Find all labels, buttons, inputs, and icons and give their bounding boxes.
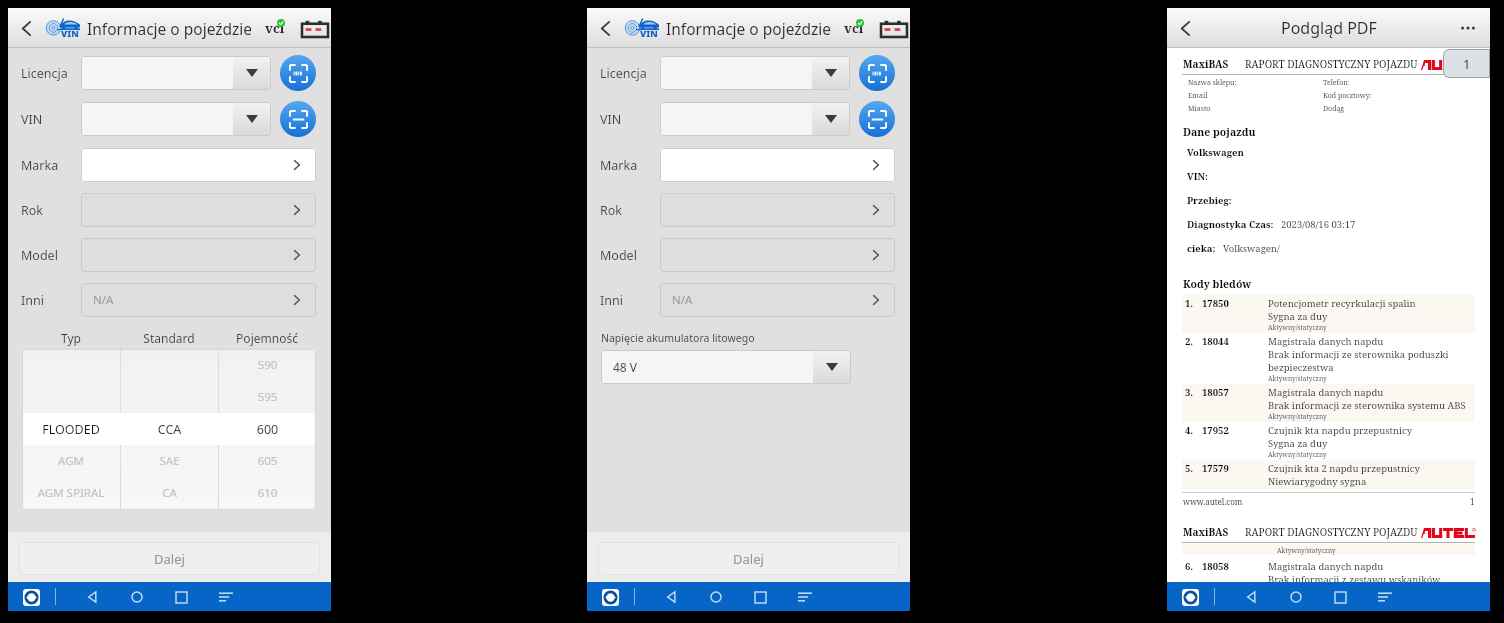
staticText: 3. (1185, 386, 1194, 399)
button[interactable]: Back (592, 15, 618, 41)
button[interactable]: Page 1 (1443, 49, 1490, 78)
button[interactable]: Home (123, 583, 151, 611)
button[interactable]: 595 (22, 381, 316, 413)
staticText: MaxiBAS (1183, 57, 1229, 71)
button[interactable]: N/A (81, 283, 316, 317)
staticText: 590 (219, 357, 316, 373)
button[interactable] (660, 102, 850, 136)
button[interactable]: Dalej (598, 542, 899, 575)
button[interactable] (81, 102, 271, 136)
button[interactable]: Battery (302, 20, 328, 37)
staticText: 610 (219, 485, 316, 501)
button[interactable]: AGM (22, 445, 316, 477)
button[interactable] (81, 238, 316, 272)
button[interactable]: N/A (660, 283, 895, 317)
button[interactable]: Back (1172, 15, 1198, 41)
button[interactable]: Dalej (19, 542, 320, 575)
button[interactable]: Battery (881, 20, 907, 37)
staticText: Standard (120, 330, 218, 346)
button[interactable]: Back (13, 15, 39, 41)
staticText: Niewiarygodny sygna (1268, 475, 1367, 488)
staticText: 1. (1185, 297, 1194, 310)
staticText: 600 (219, 421, 316, 438)
button[interactable]: 48 V (601, 350, 851, 384)
staticText: Sygna za duy (1268, 437, 1328, 450)
staticText: 18044 (1202, 335, 1229, 348)
staticText: AGM SPIRAL (22, 485, 120, 501)
staticText: Brak informacji z zestawu wskaników (1268, 573, 1441, 582)
staticText: 2023/08/16 03:17 (1281, 218, 1356, 231)
staticText: Informacje o pojeździe (87, 18, 253, 39)
staticText: Dalej (154, 550, 185, 568)
button[interactable]: More options (1456, 16, 1480, 40)
staticText: 1 (1470, 496, 1475, 507)
button[interactable]: Quick access (22, 588, 40, 606)
staticText: Czujnik kta 2 napdu przepustnicy (1268, 462, 1420, 475)
staticText: Email (1188, 91, 1323, 101)
staticText: vci (844, 19, 864, 37)
staticText: Inni (21, 292, 44, 309)
staticText: MaxiBAS (1183, 525, 1229, 539)
button[interactable]: FLOODED (22, 413, 316, 445)
button[interactable] (81, 148, 316, 182)
staticText: Rok (21, 202, 44, 219)
button[interactable]: Home (702, 583, 730, 611)
button[interactable]: Scan VIN (280, 101, 316, 137)
staticText: 18057 (1202, 386, 1229, 399)
staticText: Aktywny/statyczny (1268, 374, 1327, 383)
button[interactable]: Back (657, 583, 685, 611)
staticText: Licencja (600, 65, 647, 82)
staticText: Model (600, 247, 637, 264)
staticText: N/A (93, 292, 114, 308)
staticText: Aktywny/statyczny (1268, 412, 1327, 421)
button[interactable] (660, 238, 895, 272)
button[interactable]: Scan Licencja (859, 55, 895, 91)
button[interactable] (81, 193, 316, 227)
staticText: Marka (600, 157, 638, 174)
button[interactable]: Recents (746, 583, 774, 611)
button[interactable] (660, 148, 895, 182)
staticText: Przebieg: (1187, 194, 1232, 207)
button[interactable]: Back (78, 583, 106, 611)
staticText: Pojemność (218, 330, 316, 346)
button[interactable]: Menu (791, 583, 819, 611)
button[interactable]: VCI (265, 19, 285, 37)
staticText: VIN (21, 111, 43, 128)
button[interactable]: Recents (167, 583, 195, 611)
staticText: Dane pojazdu (1183, 125, 1256, 139)
staticText: Informacje o pojeździe (666, 18, 832, 39)
staticText: 5. (1185, 462, 1194, 475)
staticText: Inni (600, 292, 623, 309)
button[interactable]: Menu (1371, 583, 1399, 611)
button[interactable]: 590 (22, 349, 316, 381)
staticText: 1 (1463, 55, 1471, 73)
button[interactable] (660, 56, 850, 90)
button[interactable] (81, 56, 271, 90)
staticText: 17850 (1202, 297, 1229, 310)
staticText: Typ (22, 330, 120, 346)
staticText: SAE (121, 453, 218, 469)
staticText: Model (21, 247, 58, 264)
button[interactable]: Menu (212, 583, 240, 611)
staticText: RAPORT DIAGNOSTYCZNY POJAZDU (1245, 525, 1418, 539)
button[interactable]: Recents (1326, 583, 1354, 611)
button[interactable]: Quick access (601, 588, 619, 606)
button[interactable] (660, 193, 895, 227)
button[interactable]: Scan VIN (859, 101, 895, 137)
staticText (22, 389, 120, 405)
button[interactable]: Back (1237, 583, 1265, 611)
button[interactable]: Home (1282, 583, 1310, 611)
staticText: vci (265, 19, 285, 37)
button[interactable]: Scan Licencja (280, 55, 316, 91)
staticText: 48 V (613, 359, 638, 375)
staticText: 595 (219, 389, 316, 405)
button[interactable]: AGM SPIRAL (22, 477, 316, 509)
button[interactable]: Quick access (1181, 588, 1199, 606)
staticText: Aktywny/statyczny (1268, 323, 1327, 332)
staticText: 17579 (1202, 462, 1229, 475)
staticText: Kody bledów (1183, 277, 1252, 291)
button[interactable]: VCI (844, 19, 864, 37)
